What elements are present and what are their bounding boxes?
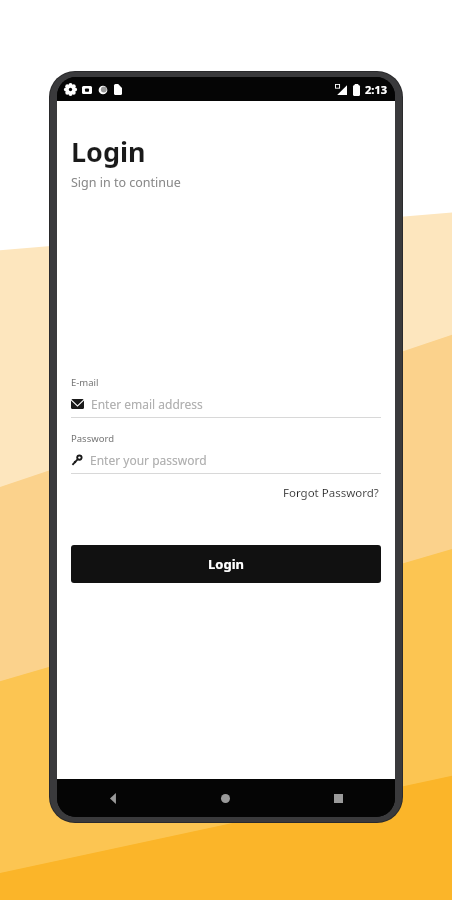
button[interactable]: Home	[169, 779, 282, 817]
staticText: Password	[71, 432, 114, 445]
button[interactable]: Login	[71, 545, 381, 583]
staticText: Login	[71, 133, 146, 170]
button[interactable]: Enter your password	[71, 452, 381, 473]
button[interactable]: Back	[57, 779, 169, 817]
staticText: 2:13	[365, 82, 387, 97]
staticText: Enter email address	[91, 396, 203, 412]
staticText: Login	[208, 555, 244, 573]
staticText: Sign in to continue	[71, 174, 181, 191]
staticText: Forgot Password?	[283, 485, 379, 501]
button[interactable]: Enter email address	[71, 396, 381, 417]
staticText: Enter your password	[90, 452, 207, 468]
staticText: E-mail	[71, 376, 99, 389]
button[interactable]: Recent apps	[282, 779, 395, 817]
button[interactable]: Forgot Password?	[281, 483, 381, 503]
